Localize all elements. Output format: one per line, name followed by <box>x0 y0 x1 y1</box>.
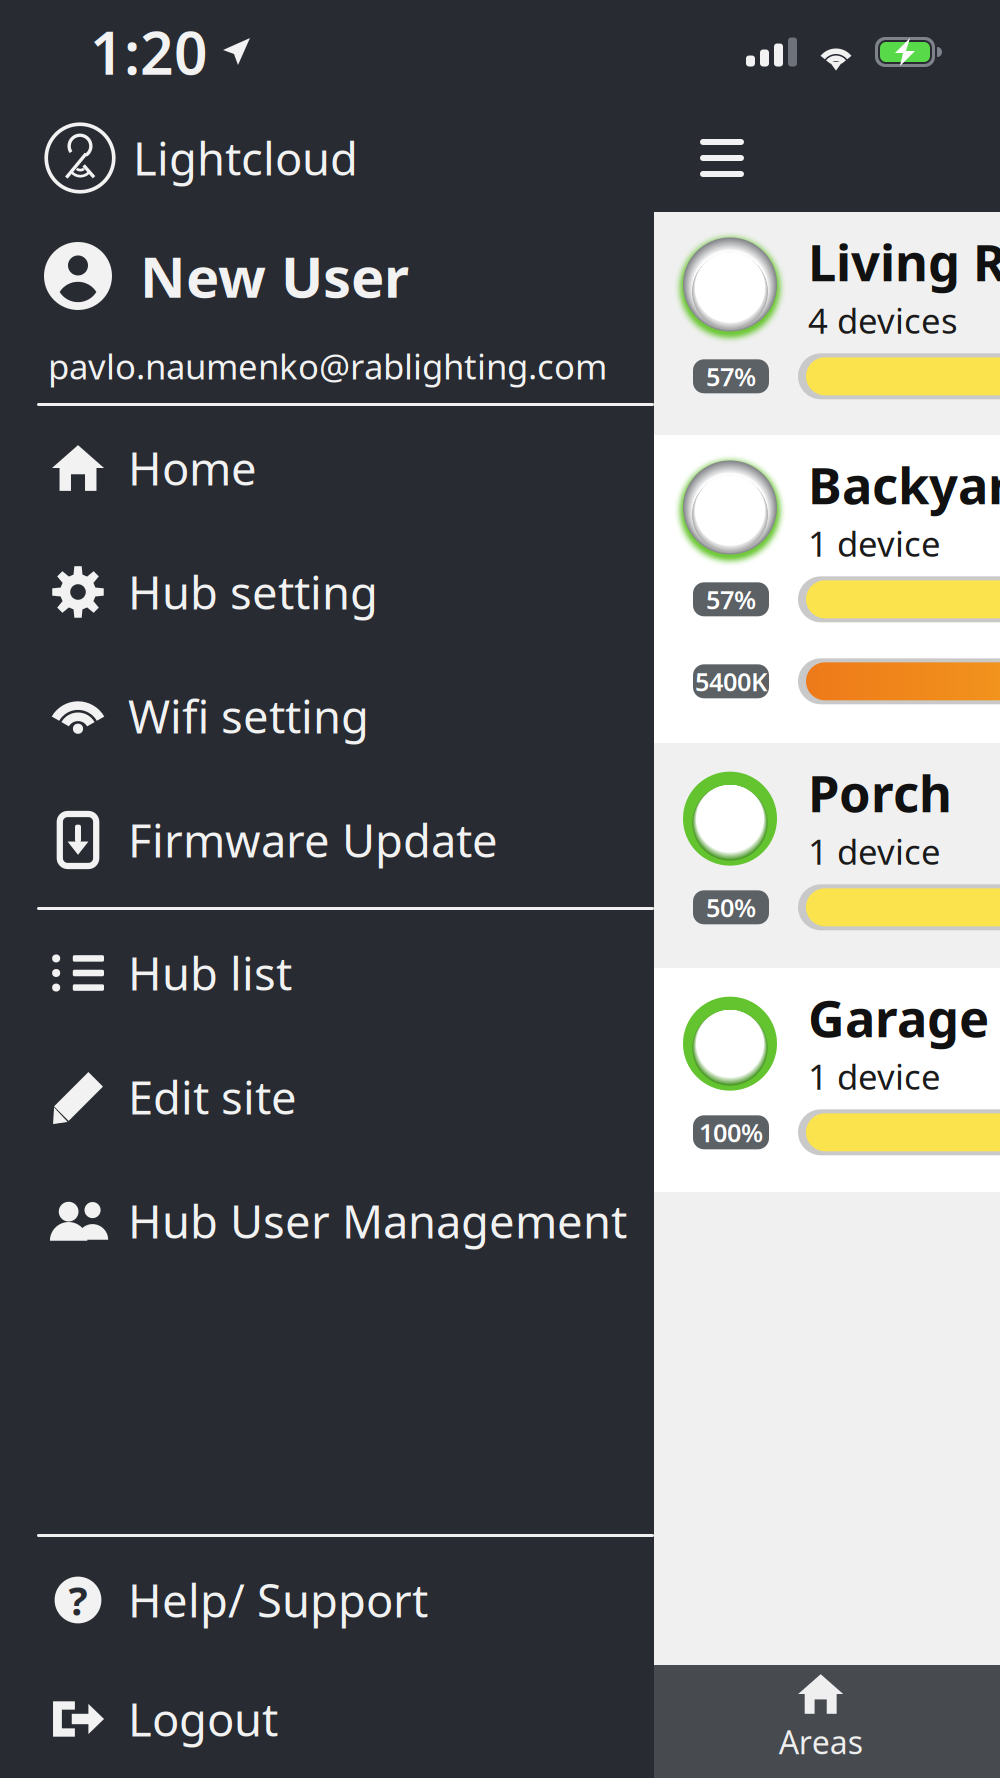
button[interactable]: Menu <box>674 110 770 206</box>
button[interactable]: Areas <box>654 1656 987 1778</box>
button[interactable]: ? <box>0 1540 654 1660</box>
button[interactable]: Porch <box>654 743 1000 968</box>
staticText: Lightcloud <box>133 128 358 188</box>
staticText: New User <box>140 239 409 313</box>
staticText: 5400K <box>695 664 767 698</box>
button[interactable]: Edit site <box>0 1035 654 1159</box>
button[interactable]: Living Room <box>654 212 1000 435</box>
staticText: 57% <box>706 582 756 616</box>
staticText: 1 device <box>808 828 941 874</box>
staticText: Hub setting <box>128 562 378 622</box>
staticText: Firmware Update <box>128 810 498 870</box>
button[interactable]: Hub list <box>0 911 654 1035</box>
staticText: Wifi setting <box>128 686 369 746</box>
staticText: Porch <box>808 759 952 826</box>
button[interactable]: Home <box>0 406 654 530</box>
staticText: 100% <box>699 1115 763 1149</box>
staticText: 50% <box>706 890 756 924</box>
button[interactable]: Firmware Update <box>0 778 654 902</box>
staticText: Hub list <box>128 943 292 1003</box>
staticText: 4 devices <box>808 297 958 343</box>
button[interactable]: Hub User Management <box>0 1159 654 1283</box>
button[interactable]: Hub setting <box>0 530 654 654</box>
button[interactable]: Wifi setting <box>0 654 654 778</box>
button[interactable]: Logout <box>0 1660 654 1778</box>
staticText: 57% <box>706 359 756 393</box>
staticText: Edit site <box>128 1067 297 1127</box>
staticText: pavlo.naumenko@rablighting.com <box>48 343 607 389</box>
staticText: Logout <box>128 1689 278 1749</box>
button[interactable]: Scenes <box>987 1656 1000 1778</box>
staticText: Living Room <box>808 228 1000 295</box>
staticText: Help/ Support <box>128 1570 428 1630</box>
staticText: 1 device <box>808 1053 941 1099</box>
button[interactable]: Garage <box>654 968 1000 1192</box>
staticText: Backyard <box>808 451 1000 518</box>
staticText: Areas <box>779 1720 863 1763</box>
staticText: Hub User Management <box>128 1191 627 1251</box>
staticText: Garage <box>808 984 989 1051</box>
button[interactable]: Backyard <box>654 435 1000 743</box>
staticText: ? <box>68 1573 87 1626</box>
staticText: 1 device <box>808 520 941 566</box>
staticText: Home <box>128 438 257 498</box>
staticText: 1:20 <box>90 13 208 91</box>
